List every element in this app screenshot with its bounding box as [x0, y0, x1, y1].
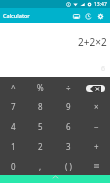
staticText: 5	[38, 121, 43, 132]
staticText: 0	[11, 161, 16, 172]
button[interactable]: Backspace	[86, 85, 105, 92]
staticText: 1	[11, 141, 16, 152]
staticText: 3	[66, 141, 71, 152]
button[interactable]: 4	[0, 115, 27, 135]
button[interactable]: Keypad	[70, 10, 82, 22]
staticText: ^	[11, 82, 16, 93]
button[interactable]: 6	[54, 115, 82, 135]
staticText: ,	[39, 161, 42, 172]
staticText: Calculator	[3, 12, 30, 19]
button[interactable]: ,	[27, 155, 54, 175]
button[interactable]: Settings	[94, 10, 106, 22]
staticText: 9	[66, 101, 71, 112]
staticText: ÷	[66, 82, 71, 93]
button[interactable]: +	[82, 135, 110, 155]
button[interactable]: 7	[0, 96, 27, 115]
button[interactable]: %	[27, 77, 54, 96]
button[interactable]: Backspace	[82, 77, 110, 96]
button[interactable]: 8	[27, 96, 54, 115]
button[interactable]: ÷	[54, 77, 82, 96]
staticText: %	[37, 82, 44, 93]
button[interactable]: 9	[54, 96, 82, 115]
staticText: 13:47	[94, 1, 107, 8]
button[interactable]: ( )	[54, 155, 82, 175]
button[interactable]: History	[82, 10, 94, 22]
button[interactable]: 0	[0, 155, 27, 175]
button[interactable]: 5	[27, 115, 54, 135]
staticText: 2+2×2	[78, 35, 107, 49]
staticText: +	[94, 141, 99, 152]
staticText: 4	[11, 121, 16, 132]
button[interactable]: 2	[27, 135, 54, 155]
button[interactable]	[82, 155, 110, 175]
staticText: 6	[66, 121, 71, 132]
button[interactable]: ^	[0, 77, 27, 96]
button[interactable]: 1	[0, 135, 27, 155]
staticText: ( )	[65, 161, 72, 172]
staticText: 7	[11, 101, 16, 112]
staticText: ×	[94, 101, 99, 112]
staticText: 6	[101, 64, 106, 74]
button[interactable]: −	[82, 115, 110, 135]
staticText: 2	[38, 141, 43, 152]
staticText: −	[94, 121, 99, 132]
other: Home	[53, 176, 58, 178]
staticText: 8	[38, 101, 43, 112]
button[interactable]: 3	[54, 135, 82, 155]
button[interactable]: ×	[82, 96, 110, 115]
